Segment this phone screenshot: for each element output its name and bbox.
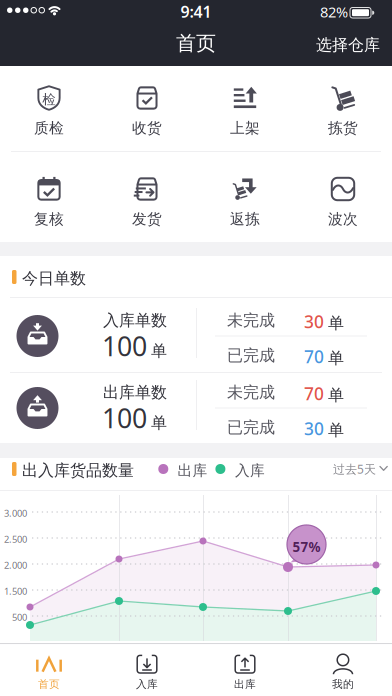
staticText: 入库 — [235, 461, 265, 479]
staticText: 选择仓库 — [316, 35, 380, 55]
button[interactable]: 过去5天 — [333, 458, 388, 480]
staticText: 检 — [43, 92, 55, 107]
button[interactable]: 出库单数 — [0, 372, 392, 447]
staticText: 复核 — [34, 210, 64, 228]
staticText: 3.000 — [4, 507, 27, 519]
button[interactable]: 检 — [0, 66, 98, 151]
staticText: 波次 — [328, 210, 358, 228]
button[interactable]: 波次 — [294, 157, 392, 242]
staticText: 100 — [102, 400, 147, 436]
button[interactable]: 拣货 — [294, 66, 392, 151]
button[interactable]: 返拣 — [196, 157, 294, 242]
staticText: 单 — [328, 348, 344, 368]
staticText: 出库 — [234, 678, 256, 691]
staticText: 已完成 — [227, 417, 275, 437]
staticText: 质检 — [34, 119, 64, 137]
staticText: 1.500 — [4, 585, 27, 597]
staticText: 入库 — [136, 678, 158, 691]
button[interactable]: 上架 — [196, 66, 294, 151]
staticText: 上架 — [230, 119, 260, 137]
staticText: 9:41 — [180, 1, 211, 22]
staticText: 单 — [151, 341, 167, 361]
staticText: 未完成 — [227, 310, 275, 330]
button[interactable]: 入库单数 — [0, 297, 392, 372]
staticText: 首页 — [176, 31, 216, 56]
staticText: 82% — [320, 2, 348, 21]
staticText: 57% — [292, 538, 320, 556]
staticText: 出入库货品数量 — [22, 460, 134, 480]
button[interactable]: 收货 — [98, 66, 196, 151]
staticText: 首页 — [38, 678, 60, 691]
staticText: 70 — [304, 382, 324, 405]
button[interactable]: 选择仓库 — [310, 24, 386, 66]
staticText: 今日单数 — [22, 268, 86, 288]
staticText: 拣货 — [328, 119, 358, 137]
staticText: 单 — [328, 385, 344, 405]
staticText: 出库单数 — [103, 382, 167, 402]
staticText: 2.500 — [4, 533, 27, 545]
button[interactable]: 入库 — [98, 644, 196, 696]
staticText: 单 — [151, 413, 167, 433]
button[interactable]: 我的 — [294, 644, 392, 696]
button[interactable]: 复核 — [0, 157, 98, 242]
staticText: 70 — [304, 345, 324, 368]
staticText: 单 — [328, 420, 344, 440]
staticText: 未完成 — [227, 382, 275, 402]
staticText: 我的 — [332, 678, 354, 691]
staticText: 30 — [304, 417, 324, 440]
staticText: 已完成 — [227, 345, 275, 365]
staticText: 出库 — [177, 461, 207, 479]
staticText: 过去5天 — [333, 461, 376, 477]
staticText: 100 — [102, 328, 147, 364]
button[interactable]: 发货 — [98, 157, 196, 242]
staticText: 单 — [328, 313, 344, 333]
button[interactable]: 首页 — [0, 644, 98, 696]
staticText: 入库单数 — [103, 310, 167, 330]
staticText: 发货 — [132, 210, 162, 228]
staticText: 收货 — [132, 119, 162, 137]
staticText: 30 — [304, 310, 324, 333]
staticText: 500 — [12, 611, 27, 623]
button[interactable]: 出库 — [196, 644, 294, 696]
staticText: 2.000 — [4, 559, 27, 571]
staticText: 返拣 — [230, 210, 260, 228]
